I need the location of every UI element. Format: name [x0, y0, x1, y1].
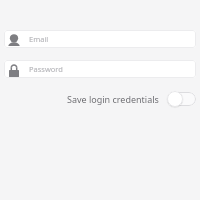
button[interactable]: Save login credentials	[67, 90, 200, 107]
button[interactable]: Save login credentials	[167, 90, 196, 107]
button[interactable]: Password	[4, 60, 196, 78]
staticText: Save login credentials	[67, 93, 159, 105]
staticText: Password	[29, 64, 63, 74]
staticText: Email	[29, 34, 49, 44]
button[interactable]: Email	[4, 30, 196, 48]
